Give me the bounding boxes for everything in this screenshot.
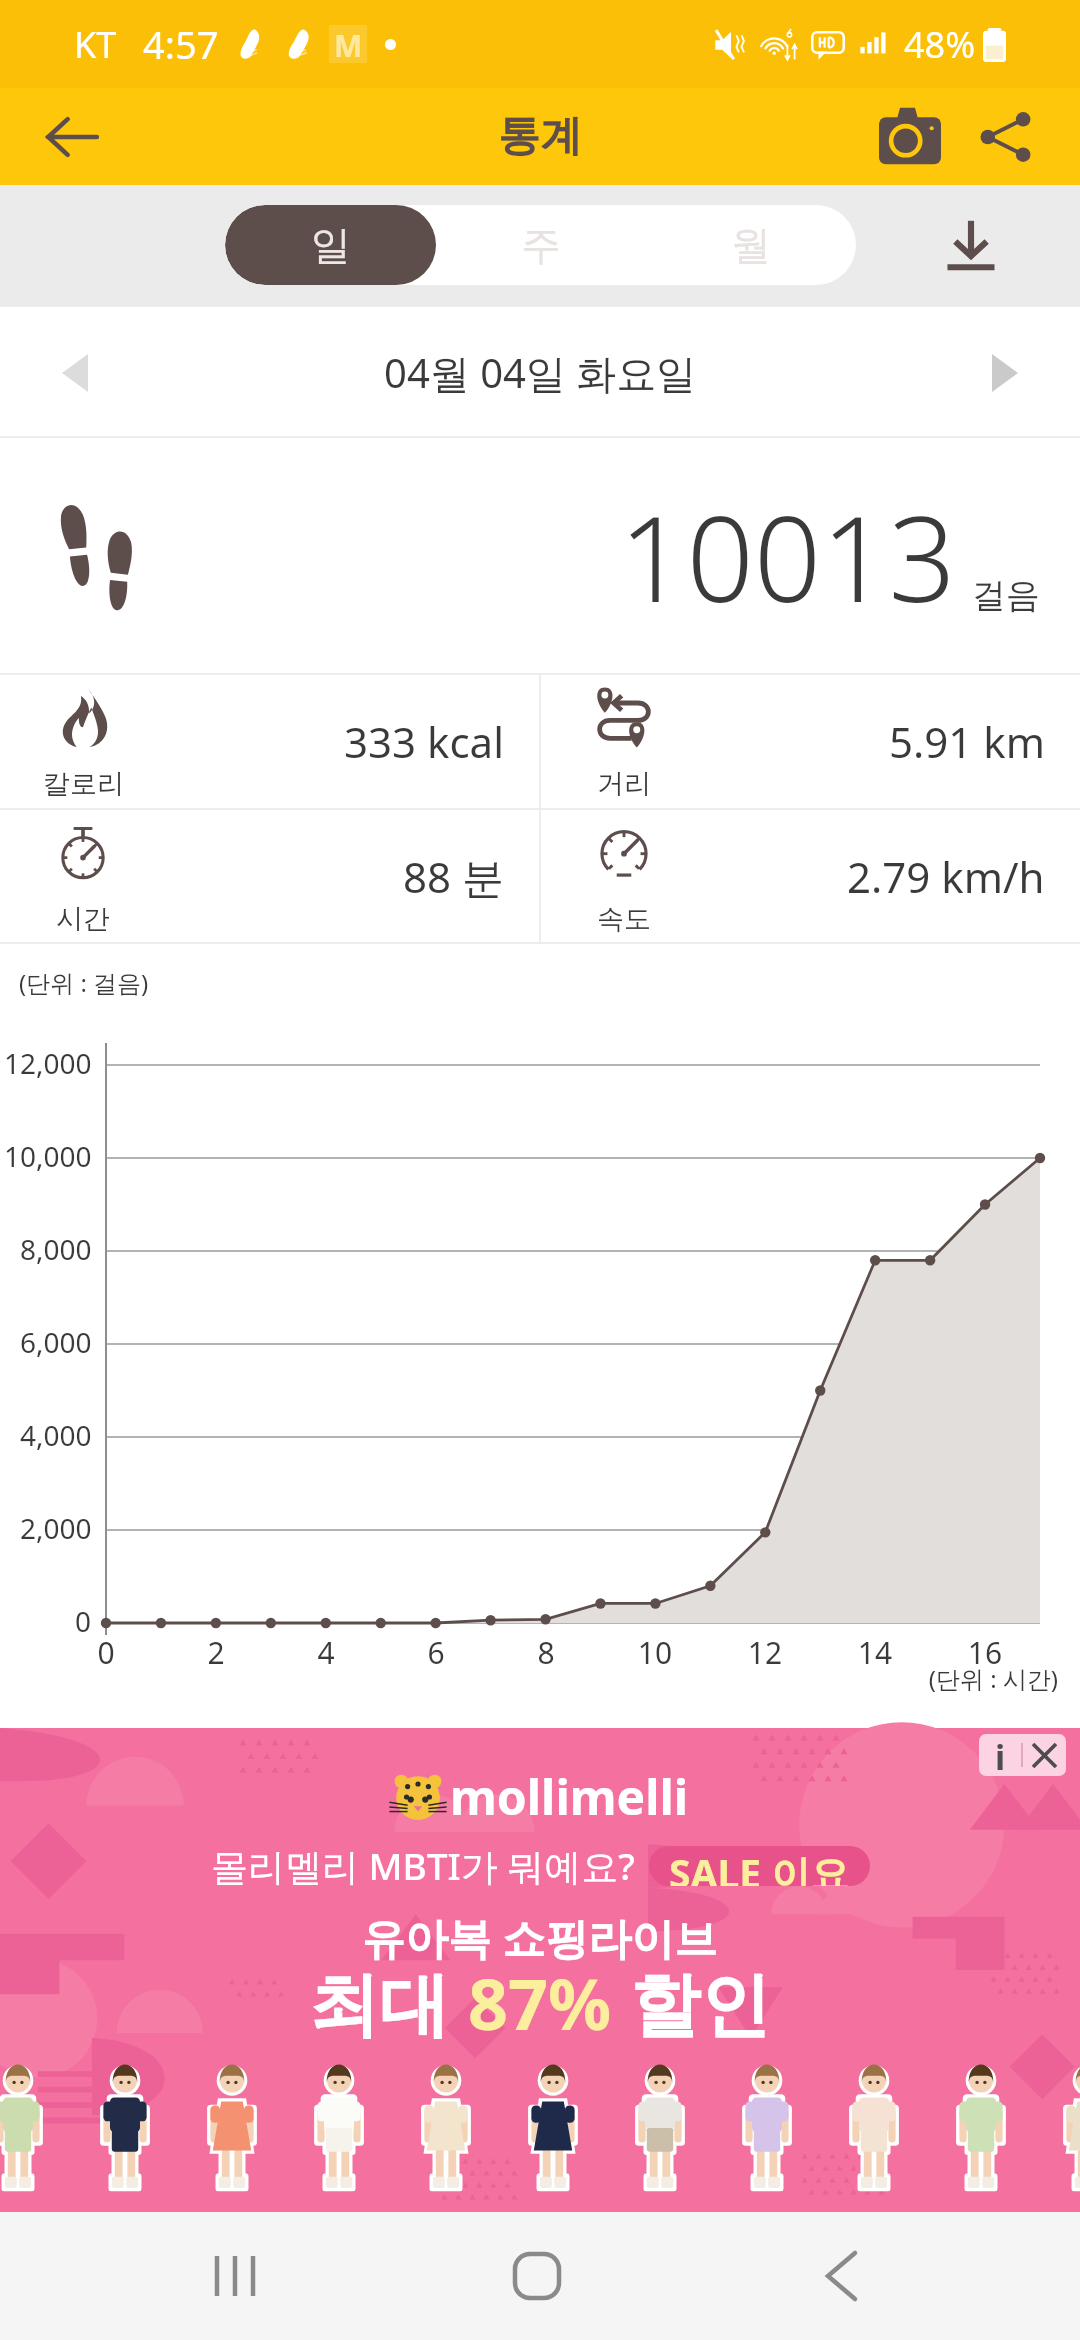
button[interactable]: 속도 (541, 810, 1080, 942)
staticText: 걸음 (972, 574, 1040, 617)
staticText: (단위 : 걸음) (19, 966, 149, 999)
button[interactable]: Home (477, 2212, 597, 2340)
staticText: 속도 (597, 902, 651, 936)
staticText: 거리 (597, 767, 651, 801)
staticText: M (334, 25, 363, 63)
button[interactable]: 주 (436, 205, 646, 285)
staticText: 88 분 (403, 848, 504, 905)
staticText: 주 (521, 220, 561, 270)
staticText: 87% (468, 1955, 612, 2050)
staticText: 16 (945, 1632, 1025, 1673)
staticText: 6,000 (20, 1323, 92, 1361)
button[interactable]: 시간 (0, 810, 539, 942)
button[interactable]: Ad info (979, 1734, 1021, 1776)
staticText: 8,000 (20, 1230, 92, 1268)
staticText: 333 kcal (344, 713, 504, 770)
staticText: (단위 : 시간) (0, 1662, 1058, 1695)
staticText: 12,000 (4, 1044, 92, 1082)
staticText: 통계 (498, 110, 582, 163)
staticText: i (995, 1734, 1006, 1776)
staticText: 8 (506, 1632, 586, 1673)
staticText: KT (74, 20, 117, 69)
staticText: 10013 (619, 476, 956, 637)
button[interactable]: Previous day (30, 328, 120, 418)
staticText: 0 (66, 1632, 146, 1673)
button[interactable]: Camera (862, 89, 958, 185)
button[interactable]: Close ad (1023, 1734, 1066, 1776)
button[interactable]: Back (781, 2212, 901, 2340)
staticText: 10 (615, 1632, 695, 1673)
staticText: 유아복 쇼핑라이브 (362, 1908, 718, 1967)
staticText: 2 (176, 1632, 256, 1673)
button[interactable]: 칼로리 (0, 675, 539, 808)
staticText: 12 (725, 1632, 805, 1673)
staticText: 2.79 km/h (847, 848, 1045, 905)
button[interactable]: 거리 (541, 675, 1080, 808)
staticText: 48% (904, 20, 976, 69)
staticText: 시간 (56, 902, 110, 936)
button[interactable]: 월 (646, 205, 856, 285)
staticText: 4,000 (20, 1416, 92, 1454)
staticText: 14 (835, 1632, 915, 1673)
staticText: 월 (731, 220, 771, 270)
button[interactable]: Recent apps (175, 2212, 295, 2340)
staticText: 4:57 (143, 18, 219, 70)
staticText: 칼로리 (43, 767, 124, 801)
button[interactable]: Share (958, 89, 1054, 185)
staticText: 몰리멜리 MBTI가 뭐예요? (211, 1840, 635, 1891)
staticText: 최대 (309, 1954, 468, 2050)
staticText: 10,000 (4, 1137, 92, 1175)
button[interactable]: Back (24, 89, 120, 185)
button[interactable]: 일 (225, 205, 436, 285)
staticText: SALE 이요 (669, 1846, 850, 1886)
button[interactable]: Next day (960, 328, 1050, 418)
staticText: 일 (311, 220, 351, 270)
staticText: 6 (396, 1632, 476, 1673)
button[interactable]: Download (927, 202, 1015, 290)
button[interactable]: mollimelli (0, 1728, 1080, 2212)
staticText: 5.91 km (889, 713, 1045, 770)
staticText: 2,000 (20, 1509, 92, 1547)
staticText: mollimelli (450, 1764, 689, 1829)
staticText: 4 (286, 1632, 366, 1673)
staticText: 04월 04일 화요일 (384, 345, 697, 400)
staticText: 0 (75, 1602, 92, 1640)
staticText: 할인 (612, 1954, 771, 2050)
